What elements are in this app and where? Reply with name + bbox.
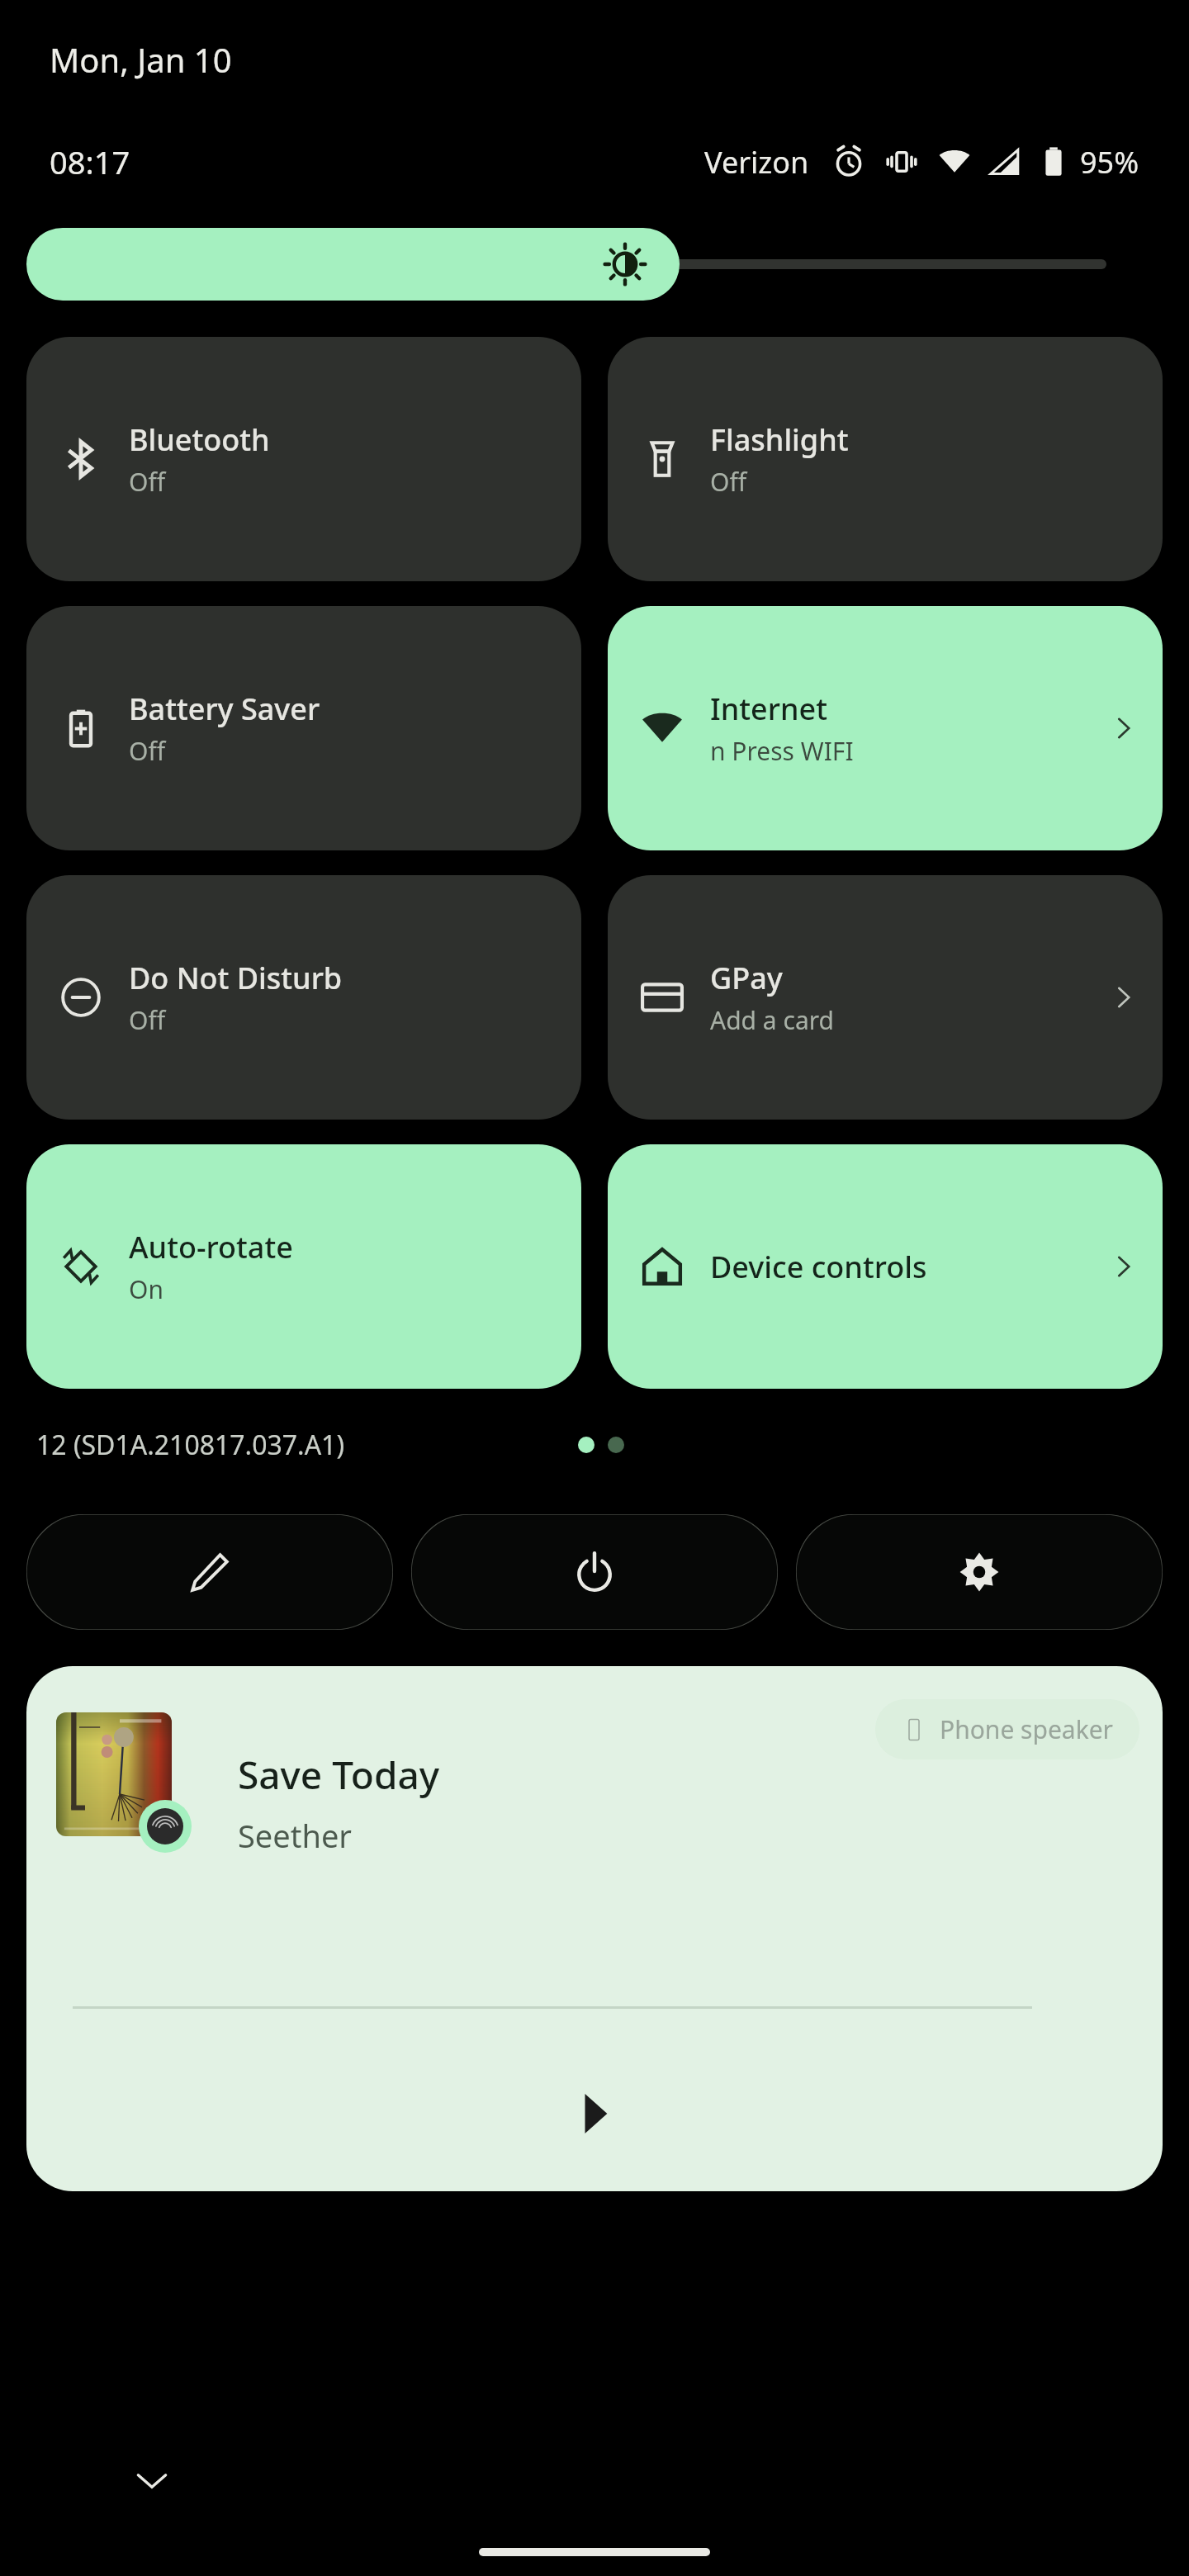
staticText: Phone speaker [940,1712,1113,1746]
staticText: Flashlight [710,419,849,460]
button[interactable]: Auto-rotate [26,1144,581,1389]
staticText: n Press WIFI [710,734,854,768]
button[interactable]: Phone speaker [26,1666,1163,2191]
button[interactable]: Settings [796,1514,1163,1630]
staticText: Internet [710,689,828,729]
staticText: Add a card [710,1003,834,1037]
staticText: Device controls [710,1247,927,1287]
staticText: Auto-rotate [129,1227,293,1267]
button[interactable]: Do Not Disturb [26,875,581,1120]
staticText: Off [129,465,166,499]
button[interactable]: Bluetooth [26,337,581,581]
staticText: Verizon [704,142,809,182]
staticText: On [129,1272,163,1306]
staticText: 08:17 [50,140,130,183]
button[interactable]: Device controls [608,1144,1163,1389]
staticText: Off [129,734,166,768]
button[interactable]: Phone speaker [875,1699,1139,1759]
staticText: Seether [238,1814,353,1857]
staticText: Off [129,1003,166,1037]
button[interactable]: Play [548,2067,641,2160]
staticText: GPay [710,958,783,998]
button[interactable]: GPay [608,875,1163,1120]
button[interactable]: Collapse [119,2447,185,2513]
staticText: Mon, Jan 10 [50,37,232,82]
staticText: Off [710,465,747,499]
button[interactable]: Edit [26,1514,393,1630]
button[interactable]: Internet [608,606,1163,850]
staticText: Battery Saver [129,689,320,729]
button[interactable]: Brightness [26,228,680,301]
staticText: 12 (SD1A.210817.037.A1) [36,1427,345,1463]
staticText: Bluetooth [129,419,270,460]
staticText: 95% [1080,142,1139,182]
button[interactable]: Flashlight [608,337,1163,581]
button[interactable]: Power [411,1514,778,1630]
staticText: Save Today [238,1749,440,1801]
staticText: Do Not Disturb [129,958,343,998]
button[interactable]: Battery Saver [26,606,581,850]
